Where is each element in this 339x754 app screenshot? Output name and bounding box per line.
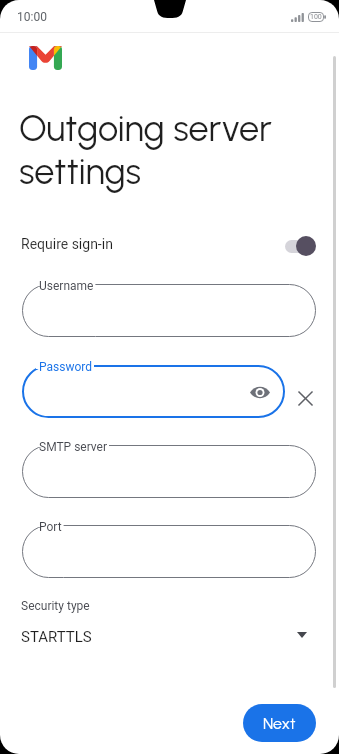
staticText: Outgoing server settings	[19, 107, 272, 193]
staticText: Port	[39, 520, 62, 534]
staticText: Password	[39, 360, 93, 374]
staticText: Require sign-in	[21, 236, 113, 252]
button[interactable]: Require sign-in	[0, 224, 339, 264]
button[interactable]: Username	[22, 284, 316, 337]
button[interactable]: Show password	[247, 379, 273, 405]
button[interactable]: SMTP server	[22, 445, 316, 498]
button[interactable]: Clear	[292, 385, 318, 411]
button[interactable]: Security type	[0, 599, 339, 646]
staticText: Next	[263, 714, 296, 733]
button[interactable]: Next	[243, 704, 316, 742]
button[interactable]: Password	[22, 365, 285, 418]
staticText: 100	[310, 13, 322, 21]
button[interactable]: Port	[22, 525, 316, 578]
staticText: Security type	[21, 599, 90, 613]
staticText: 10:00	[17, 10, 47, 24]
staticText: STARTTLS	[21, 628, 92, 646]
staticText: SMTP server	[39, 440, 108, 454]
staticText: Username	[39, 279, 94, 293]
